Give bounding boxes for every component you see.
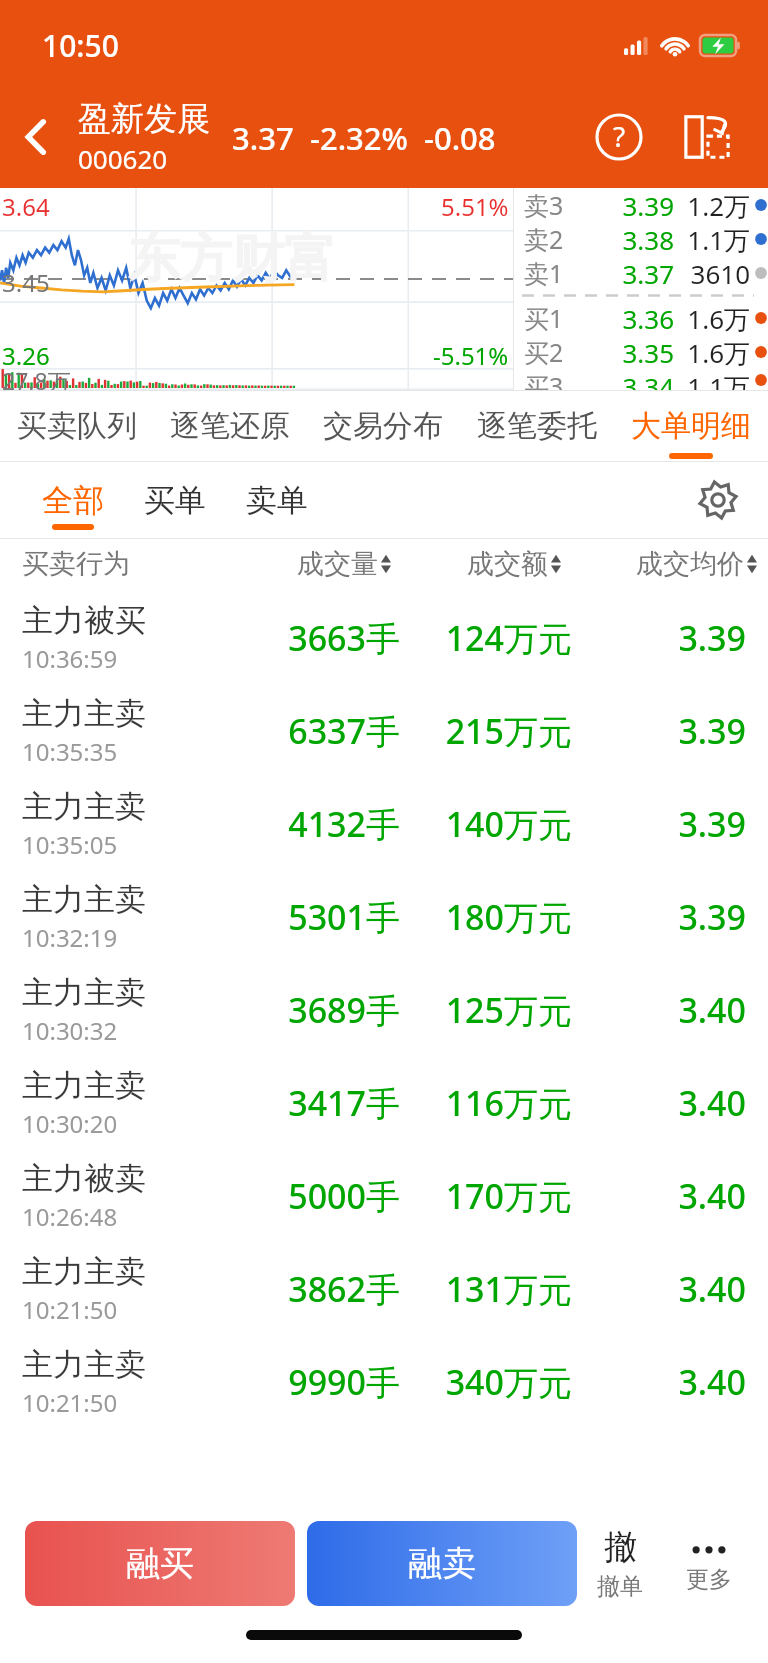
button[interactable]: 主力被卖	[0, 1149, 768, 1242]
staticText: 买卖队列	[17, 407, 137, 445]
staticText: ?	[613, 117, 626, 155]
staticText: 主力主卖	[22, 880, 146, 919]
button[interactable]: 买卖队列	[0, 391, 153, 461]
staticText: 5.51%	[441, 190, 509, 223]
button[interactable]: Back	[0, 101, 72, 173]
staticText: 3.40	[572, 1173, 746, 1219]
staticText: 逐笔委托	[477, 407, 597, 445]
staticText: 融卖	[408, 1542, 476, 1585]
button[interactable]: 主力主卖	[0, 777, 768, 870]
staticText: 3.39	[572, 615, 746, 661]
staticText: 买卖行为	[22, 547, 130, 581]
staticText: 盈新发展	[78, 98, 210, 140]
button[interactable]: Help	[586, 104, 652, 170]
staticText: 3.36	[564, 301, 674, 335]
staticText: 3689手	[234, 987, 400, 1033]
staticText: 5301手	[234, 894, 400, 940]
staticText: 3417手	[234, 1080, 400, 1126]
staticText: 340万元	[400, 1359, 572, 1405]
button[interactable]: Settings	[690, 472, 746, 528]
button[interactable]: 成交量	[250, 539, 402, 589]
staticText: 主力主卖	[22, 1066, 146, 1105]
staticText: 逐笔还原	[170, 407, 290, 445]
staticText: 3.37	[564, 256, 674, 290]
button[interactable]: 主力主卖	[0, 1242, 768, 1335]
button[interactable]: 主力主卖	[0, 684, 768, 777]
staticText: 3862手	[234, 1266, 400, 1312]
staticText: 1.6万	[678, 335, 750, 369]
staticText: 9990手	[234, 1359, 400, 1405]
staticText: 10:35:05	[22, 828, 118, 861]
staticText: 东方财富	[128, 226, 336, 292]
staticText: 3.39	[572, 801, 746, 847]
staticText: -5.51%	[433, 339, 509, 372]
button[interactable]: 主力主卖	[0, 1056, 768, 1149]
staticText: 成交量	[297, 547, 378, 581]
staticText: 主力主卖	[22, 787, 146, 826]
staticText: 3.34	[564, 369, 674, 390]
staticText: 215万元	[400, 708, 572, 754]
staticText: 170万元	[400, 1173, 572, 1219]
button[interactable]: 成交均价	[572, 539, 768, 589]
staticText: 000620	[78, 141, 168, 176]
staticText: 买单	[144, 481, 206, 520]
button[interactable]: 逐笔委托	[460, 391, 614, 461]
staticText: 4132手	[234, 801, 400, 847]
staticText: 融买	[126, 1542, 194, 1585]
staticText: 3.37	[232, 117, 294, 159]
staticText: 6337手	[234, 708, 400, 754]
staticText: 买2	[524, 335, 564, 369]
button[interactable]: 主力被买	[0, 591, 768, 684]
staticText: 卖1	[524, 256, 564, 290]
button[interactable]: 更多	[663, 1507, 755, 1619]
staticText: 180万元	[400, 894, 572, 940]
staticText: 撤	[604, 1526, 637, 1568]
staticText: 10:30:32	[22, 1014, 118, 1047]
staticText: 3.40	[572, 1080, 746, 1126]
staticText: 3.38	[564, 222, 674, 256]
button[interactable]: 全部	[22, 462, 124, 538]
staticText: 卖3	[524, 188, 564, 222]
staticText: 140万元	[400, 801, 572, 847]
button[interactable]: 买单	[124, 462, 226, 538]
staticText: 主力被卖	[22, 1159, 146, 1198]
staticText: 27.8万	[2, 365, 71, 390]
button[interactable]: 融卖	[307, 1521, 577, 1606]
staticText: 10:35:35	[22, 735, 118, 768]
button[interactable]: 交易分布	[306, 391, 460, 461]
staticText: 124万元	[400, 615, 572, 661]
staticText: 3.39	[572, 708, 746, 754]
staticText: 3.35	[564, 335, 674, 369]
staticText: 3.45	[2, 266, 50, 299]
button[interactable]: 卖3	[514, 188, 768, 222]
button[interactable]: 成交额	[402, 539, 572, 589]
button[interactable]: 买2	[514, 335, 768, 369]
staticText: 10:32:19	[22, 921, 118, 954]
button[interactable]: 买3	[514, 369, 768, 390]
staticText: 3.64	[2, 190, 50, 223]
staticText: 3.26	[2, 339, 50, 372]
button[interactable]: 主力主卖	[0, 1335, 768, 1428]
button[interactable]: 主力主卖	[0, 870, 768, 963]
button[interactable]: 卖2	[514, 222, 768, 256]
button[interactable]: 融买	[25, 1521, 295, 1606]
staticText: 成交均价	[636, 547, 744, 581]
button[interactable]: 逐笔还原	[153, 391, 306, 461]
button[interactable]: 撤	[577, 1507, 663, 1619]
button[interactable]: 主力主卖	[0, 963, 768, 1056]
staticText: 3.40	[572, 1266, 746, 1312]
staticText: 3663手	[234, 615, 400, 661]
button[interactable]: 买1	[514, 301, 768, 335]
staticText: 交易分布	[323, 407, 443, 445]
staticText: 更多	[686, 1565, 732, 1594]
staticText: 1.2万	[678, 188, 750, 222]
button[interactable]: 卖1	[514, 256, 768, 290]
staticText: 1.6万	[678, 301, 750, 335]
button[interactable]: Landscape view	[672, 102, 742, 172]
staticText: 主力主卖	[22, 973, 146, 1012]
button[interactable]: 大单明细	[614, 391, 768, 461]
staticText: 成交额	[467, 547, 548, 581]
button[interactable]: 卖单	[226, 462, 328, 538]
staticText: 3.40	[572, 1359, 746, 1405]
staticText: 10:30:20	[22, 1107, 118, 1140]
